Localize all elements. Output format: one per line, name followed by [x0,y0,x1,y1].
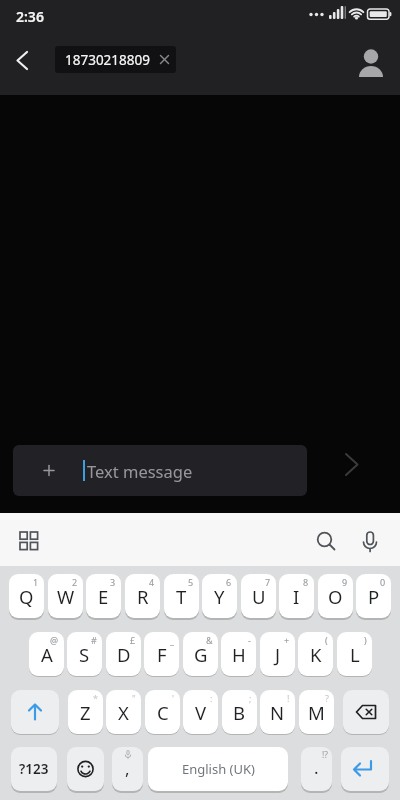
button[interactable]: R [125,574,160,618]
staticText: _ [170,634,174,646]
button[interactable]: Q [9,574,44,618]
button[interactable]: ?123 [11,747,57,791]
button[interactable] [6,46,42,74]
staticText: Text message [87,460,193,482]
button[interactable] [11,690,59,734]
button[interactable]: S [67,632,102,676]
staticText: 9 [342,576,348,588]
staticText: P [368,584,380,609]
staticText: I [293,584,300,609]
staticText: ?123 [19,760,49,778]
button[interactable]: T [164,574,199,618]
staticText: Q [19,584,34,609]
button[interactable]: . [301,747,332,791]
staticText: Z [80,700,91,725]
button[interactable]: D [106,632,141,676]
staticText: W [57,584,75,609]
staticText: O [328,584,343,609]
staticText: N [270,700,285,725]
staticText: Y [214,584,225,609]
staticText: ( [325,634,328,646]
button[interactable]: X [106,690,141,734]
staticText: # [91,634,97,646]
staticText: S [79,642,90,667]
button[interactable]: E [86,574,121,618]
staticText: C [157,700,169,725]
button[interactable]: A [29,632,64,676]
button[interactable]: H [221,632,256,676]
button[interactable]: G [183,632,218,676]
button[interactable]: , [112,747,143,791]
staticText: & [206,634,213,646]
button[interactable]: 18730218809 [55,46,176,73]
staticText: J [275,642,281,667]
button[interactable]: J [260,632,295,676]
button[interactable]: M [299,690,334,734]
staticText: K [310,642,322,667]
button[interactable] [12,524,46,558]
staticText: U [252,584,266,609]
staticText: 2 [72,576,78,588]
staticText: B [233,700,246,725]
staticText: @ [50,634,59,646]
staticText: ! [287,692,290,704]
button[interactable] [343,690,389,734]
button[interactable]: L [337,632,372,676]
button[interactable]: Z [68,690,103,734]
staticText: T [176,584,187,609]
staticText: D [117,642,131,667]
staticText: 8 [303,576,309,588]
staticText: !? [322,749,328,761]
button[interactable]: V [183,690,218,734]
staticText: ) [364,634,367,646]
button[interactable]: Text message [13,445,307,496]
staticText: 0 [380,576,386,588]
staticText: F [157,642,167,667]
button[interactable] [341,747,389,791]
button[interactable]: P [356,574,391,618]
staticText: £ [130,634,136,646]
button[interactable]: English (UK) [148,747,288,791]
button[interactable]: B [222,690,257,734]
button[interactable]: U [241,574,276,618]
staticText: ? [325,692,329,704]
staticText: 5 [188,576,194,588]
staticText: 1 [33,576,39,588]
button[interactable] [67,747,104,791]
button[interactable]: I [279,574,314,618]
button[interactable] [353,524,387,560]
staticText: 3 [110,576,116,588]
staticText: ' [172,692,175,704]
button[interactable]: W [48,574,83,618]
staticText: G [194,642,208,667]
button[interactable]: C [145,690,180,734]
button[interactable]: K [298,632,333,676]
button[interactable]: F [144,632,179,676]
staticText: 7 [265,576,271,588]
staticText: - [248,634,251,646]
staticText: , [125,757,130,780]
button[interactable] [336,448,370,482]
staticText: : [210,692,213,704]
button[interactable]: N [260,690,295,734]
button[interactable]: Y [202,574,237,618]
button[interactable] [309,524,343,560]
staticText: + [284,634,290,646]
staticText: X [118,700,129,725]
staticText: A [41,642,53,667]
button[interactable]: O [318,574,353,618]
staticText: L [350,642,360,667]
staticText: 2:36 [16,7,44,26]
staticText: 6 [226,576,232,588]
staticText: R [137,584,149,609]
staticText: 18730218809 [65,51,150,69]
staticText: H [232,642,246,667]
staticText: English (UK) [182,760,255,778]
staticText: V [195,700,207,725]
button[interactable] [354,42,390,80]
staticText: " [132,692,136,704]
staticText: . [314,756,319,779]
staticText: E [98,584,109,609]
staticText: * [93,692,98,704]
staticText: M [308,700,325,725]
